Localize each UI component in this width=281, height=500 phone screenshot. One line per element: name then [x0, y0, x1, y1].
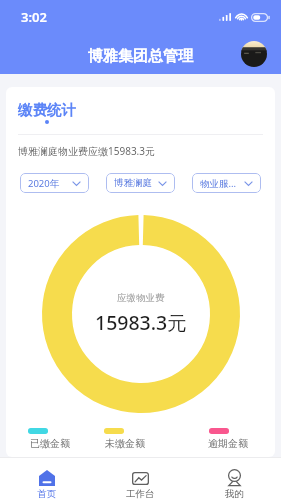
button[interactable]: 博雅澜庭	[106, 173, 175, 193]
button[interactable]: 逾期金额	[205, 421, 248, 434]
staticText: 未缴金额	[105, 437, 145, 450]
button[interactable]: Profile	[241, 41, 267, 67]
staticText: 已缴金额	[30, 437, 70, 450]
staticText: 3:02	[21, 8, 47, 26]
button[interactable]: 工作台	[93, 458, 187, 500]
button[interactable]: 首页	[0, 458, 93, 500]
staticText: 物业服...	[200, 177, 237, 190]
staticText: 博雅澜庭	[114, 177, 152, 189]
button[interactable]: 物业服...	[192, 173, 261, 193]
staticText: 博雅澜庭物业费应缴15983.3元	[18, 144, 155, 158]
staticText: 首页	[37, 488, 56, 500]
staticText: 缴费统计	[18, 101, 76, 119]
staticText: 15983.3元	[95, 309, 187, 336]
staticText: 2020年	[28, 177, 60, 190]
staticText: 博雅集团总管理	[88, 47, 193, 66]
button[interactable]: 未缴金额	[102, 421, 145, 434]
staticText: 应缴物业费	[117, 292, 165, 304]
button[interactable]: 我的	[187, 458, 281, 500]
staticText: 工作台	[126, 488, 155, 500]
staticText: 我的	[225, 488, 244, 500]
button[interactable]: 已缴金额	[27, 421, 70, 434]
button[interactable]: 2020年	[20, 173, 89, 193]
staticText: 逾期金额	[208, 437, 248, 450]
